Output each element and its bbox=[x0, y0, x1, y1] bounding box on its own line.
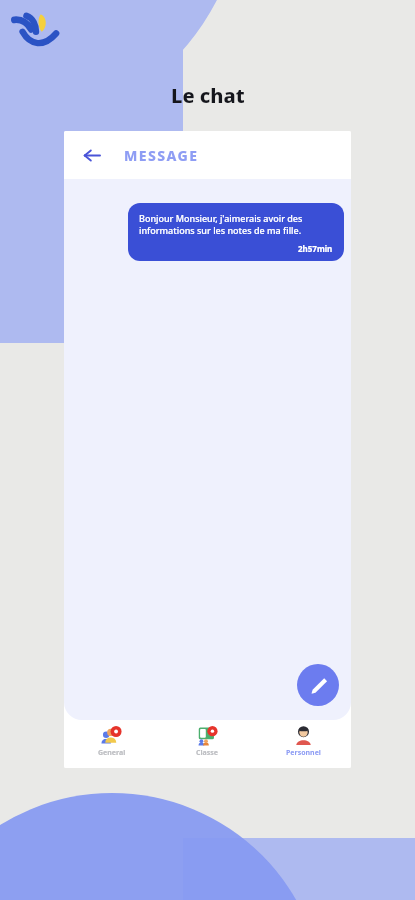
staticText: Bonjour Monsieur, j'aimerais avoir des i… bbox=[139, 212, 333, 237]
button[interactable]: Compose message bbox=[297, 664, 339, 706]
staticText: MESSAGE bbox=[124, 146, 199, 165]
staticText: 2h57min bbox=[298, 243, 333, 254]
button[interactable]: Personnel bbox=[255, 720, 351, 768]
staticText: Classe bbox=[196, 748, 218, 758]
staticText: Personnel bbox=[286, 748, 321, 758]
button[interactable]: General bbox=[64, 720, 159, 768]
button[interactable]: Back bbox=[74, 138, 108, 172]
button[interactable]: Bonjour Monsieur, j'aimerais avoir des i… bbox=[128, 203, 344, 261]
staticText: General bbox=[98, 748, 126, 758]
button[interactable]: Classe bbox=[159, 720, 255, 768]
staticText: Le chat bbox=[171, 82, 245, 109]
